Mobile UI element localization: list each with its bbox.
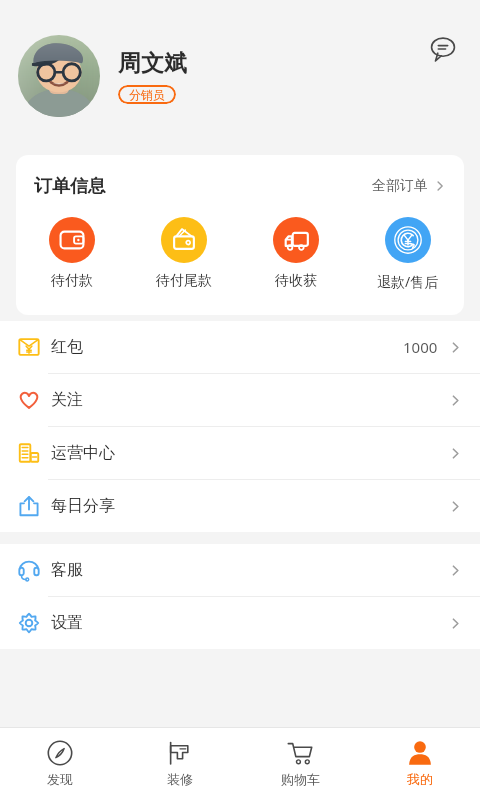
staticText: 装修 (167, 771, 193, 787)
staticText: 每日分享 (51, 496, 115, 516)
button[interactable]: 待付尾款 (128, 215, 240, 292)
button[interactable]: 每日分享 (0, 480, 480, 532)
button[interactable]: 设置 (0, 597, 480, 649)
staticText: 红包 (51, 337, 83, 357)
staticText: 关注 (51, 390, 83, 410)
staticText: 运营中心 (51, 443, 115, 463)
staticText: 待付尾款 (156, 272, 212, 290)
staticText: 发现 (47, 771, 73, 787)
button[interactable]: 发现 (0, 728, 120, 800)
staticText: 订单信息 (34, 175, 106, 198)
staticText: 分销员 (129, 87, 165, 102)
staticText: 待付款 (51, 272, 93, 290)
staticText: 我的 (407, 771, 433, 787)
button[interactable]: Messages (424, 30, 462, 68)
staticText: 周文斌 (118, 49, 187, 78)
staticText: 1000 (403, 337, 438, 357)
staticText: 待收获 (275, 272, 317, 290)
button[interactable]: 待付款 (16, 215, 128, 292)
button[interactable]: 我的 (360, 728, 480, 800)
button[interactable]: 待收获 (240, 215, 352, 292)
button[interactable]: Profile photo (18, 35, 100, 117)
button[interactable]: 购物车 (240, 728, 360, 800)
button[interactable]: 分销员 (118, 85, 176, 104)
button[interactable]: 红包 (0, 321, 480, 373)
staticText: 设置 (51, 613, 83, 633)
button[interactable]: 运营中心 (0, 427, 480, 479)
button[interactable]: 装修 (120, 728, 240, 800)
button[interactable]: 客服 (0, 544, 480, 596)
staticText: 全部订单 (372, 177, 428, 195)
staticText: 客服 (51, 560, 83, 580)
button[interactable]: 关注 (0, 374, 480, 426)
button[interactable]: 退款/售后 (352, 215, 464, 293)
staticText: 退款/售后 (377, 272, 439, 291)
staticText: 购物车 (281, 771, 320, 787)
button[interactable]: 全部订单 (368, 173, 450, 199)
